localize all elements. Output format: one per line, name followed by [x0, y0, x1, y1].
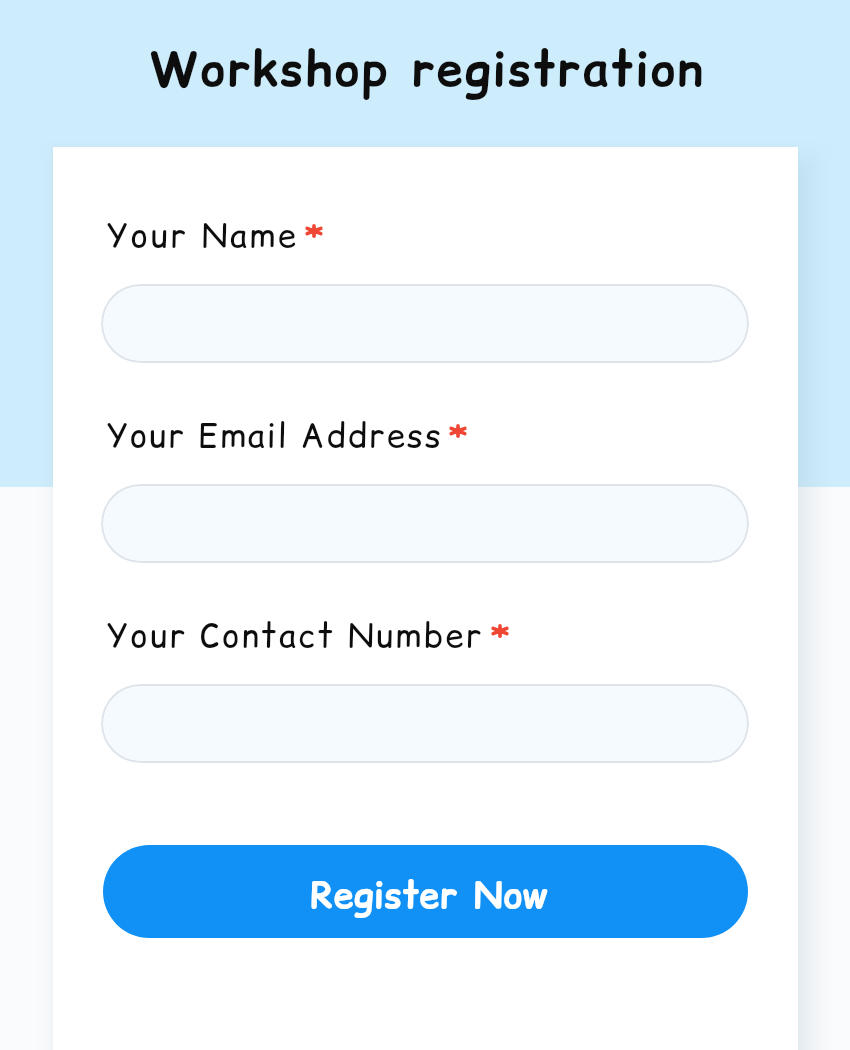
staticText: Your Email Address — [107, 412, 443, 458]
button[interactable]: Your Contact Number — [101, 684, 749, 763]
other: Required — [491, 624, 509, 638]
button[interactable]: Your Name — [101, 284, 749, 363]
button[interactable]: Your Email Address — [101, 484, 749, 563]
other: Required — [449, 424, 467, 438]
other: Required — [305, 224, 323, 238]
staticText: Workshop registration — [149, 36, 705, 102]
staticText: Your Name — [107, 212, 299, 258]
button[interactable]: Register Now — [103, 845, 748, 938]
staticText: Your Contact Number — [107, 612, 484, 658]
staticText: Register Now — [310, 870, 548, 920]
